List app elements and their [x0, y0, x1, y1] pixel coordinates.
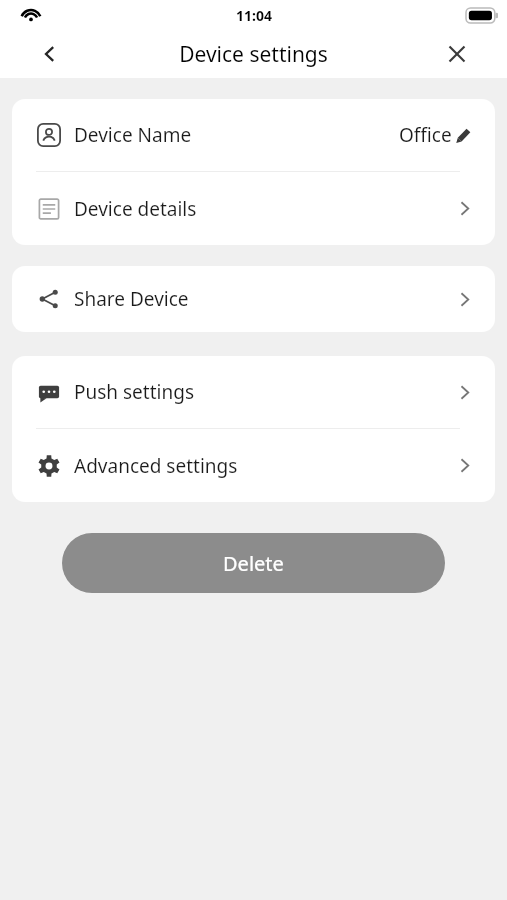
button[interactable]: Close [435, 32, 479, 76]
staticText: 11:04 [236, 6, 272, 25]
button[interactable]: Edit device name [452, 124, 474, 146]
staticText: Device Name [74, 122, 192, 148]
button[interactable]: Advanced settings [12, 429, 495, 502]
button[interactable]: Delete [62, 533, 445, 593]
staticText: Delete [223, 550, 284, 577]
button[interactable]: Push settings [12, 356, 495, 428]
button[interactable]: Share Device [12, 266, 495, 332]
staticText: Device details [74, 196, 197, 222]
staticText: Device settings [179, 40, 328, 69]
staticText: Office [399, 122, 452, 148]
button[interactable]: Device Name [12, 99, 495, 171]
button[interactable]: Device details [12, 172, 495, 245]
staticText: Push settings [74, 379, 194, 405]
staticText: Share Device [74, 286, 189, 312]
button[interactable]: Back [28, 32, 72, 76]
staticText: Advanced settings [74, 453, 238, 479]
